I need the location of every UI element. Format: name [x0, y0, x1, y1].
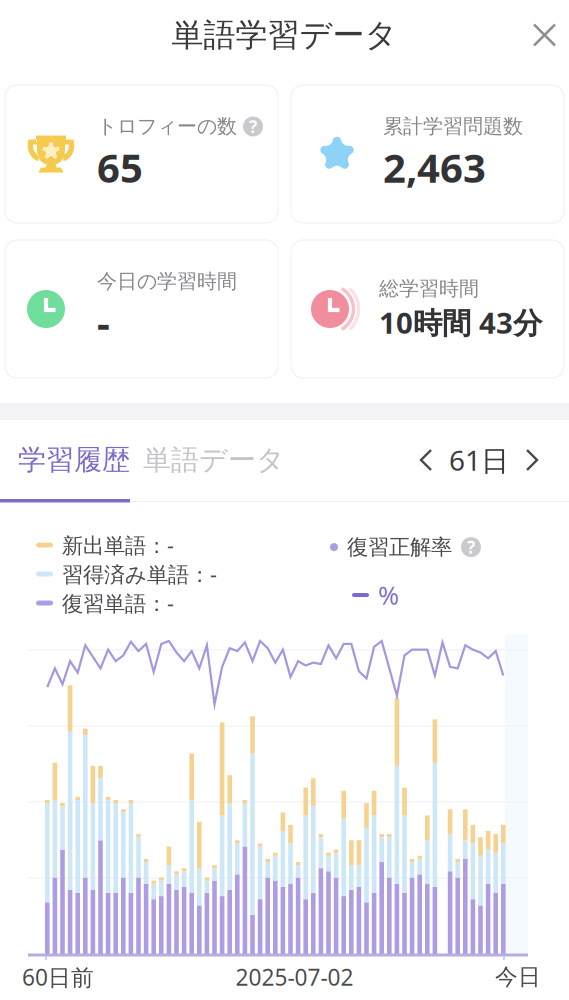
staticText: 2,463 — [383, 141, 486, 194]
staticText: % — [378, 578, 399, 612]
staticText: 復習単語：- — [62, 589, 174, 617]
button[interactable]: Next period — [509, 421, 555, 499]
staticText: トロフィーの数 — [97, 114, 237, 139]
staticText: 65 — [97, 141, 143, 194]
staticText: 61日 — [449, 441, 509, 479]
staticText: 総学習時間 — [379, 276, 479, 301]
button[interactable]: Previous period — [403, 421, 449, 499]
staticText: 今日 — [495, 963, 541, 991]
staticText: ? — [467, 536, 475, 559]
staticText: 学習履歴 — [18, 443, 130, 477]
button[interactable]: 学習履歴 — [0, 421, 130, 499]
staticText: - — [97, 296, 110, 349]
staticText: 新出単語：- — [62, 531, 174, 559]
staticText: 今日の学習時間 — [97, 269, 237, 294]
staticText: 習得済み単語：- — [62, 560, 217, 588]
staticText: 単語学習データ — [171, 15, 397, 55]
staticText: 復習正解率 — [347, 534, 452, 560]
staticText: ? — [249, 115, 257, 138]
staticText: 60日前 — [22, 962, 94, 992]
staticText: 累計学習問題数 — [383, 114, 523, 139]
staticText: 単語データ — [143, 443, 285, 477]
button[interactable]: Close — [520, 10, 569, 59]
staticText: 10時間 43分 — [379, 303, 542, 342]
button[interactable]: 単語データ — [143, 421, 273, 499]
staticText: 2025-07-02 — [235, 962, 353, 992]
